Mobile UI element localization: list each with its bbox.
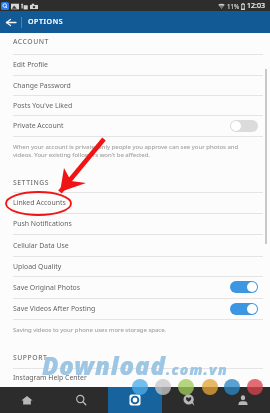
button[interactable]: Posts You've Liked — [0, 95, 270, 115]
staticText: Instagram Help Center — [13, 373, 87, 382]
staticText: Cellular Data Use — [13, 241, 69, 250]
button[interactable]: Change Password — [0, 75, 270, 95]
staticText: .com.vn — [166, 360, 228, 379]
staticText: 11% — [227, 2, 240, 10]
button[interactable]: Activity — [162, 387, 216, 413]
button[interactable]: Save Original Photos — [0, 276, 270, 298]
staticText: When your account is private, only peopl… — [13, 143, 239, 159]
button[interactable]: Private Account — [0, 115, 270, 136]
staticText: Upload Quality — [13, 262, 62, 271]
staticText: ACCOUNT — [13, 37, 49, 46]
button[interactable]: Linked Accounts — [0, 192, 270, 213]
button[interactable]: Camera — [108, 387, 162, 413]
staticText: Posts You've Liked — [13, 101, 73, 110]
button[interactable]: Search — [54, 387, 108, 413]
button[interactable]: Home — [0, 387, 54, 413]
button[interactable]: Push Notifications — [0, 213, 270, 234]
staticText: Save Original Photos — [13, 283, 230, 292]
button[interactable]: Instagram Help Center — [0, 368, 270, 387]
staticText: Save Videos After Posting — [13, 304, 230, 313]
staticText: Linked Accounts — [13, 198, 66, 207]
staticText: Download — [42, 349, 166, 382]
staticText: Private Account — [13, 121, 230, 130]
staticText: SUPPORT — [13, 353, 48, 362]
staticText: Push Notifications — [13, 219, 72, 228]
staticText: Edit Profile — [13, 60, 48, 69]
staticText: OPTIONS — [28, 17, 64, 27]
staticText: 12:03 — [247, 1, 265, 11]
staticText: Change Password — [13, 81, 71, 90]
button[interactable]: Upload Quality — [0, 256, 270, 276]
button[interactable]: Profile — [216, 387, 270, 413]
button[interactable]: Back — [0, 11, 21, 33]
button[interactable]: Edit Profile — [0, 54, 270, 75]
staticText: SETTINGS — [13, 178, 50, 187]
button[interactable]: Cellular Data Use — [0, 234, 270, 256]
button[interactable]: Save Videos After Posting — [0, 298, 270, 319]
staticText: Saving videos to your phone uses more st… — [13, 326, 167, 334]
